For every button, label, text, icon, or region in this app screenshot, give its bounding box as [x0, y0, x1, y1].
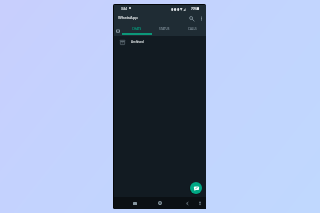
button[interactable]: Archived: [114, 36, 206, 48]
button[interactable]: CALLS: [177, 26, 208, 41]
button[interactable]: Camera: [114, 26, 122, 41]
staticText: WhatsApp: [118, 15, 138, 21]
button[interactable]: Back: [182, 197, 192, 209]
button[interactable]: Search: [186, 13, 196, 23]
staticText: Archived: [131, 40, 144, 44]
staticText: CHATS: [132, 27, 142, 31]
staticText: 3:34: [121, 7, 127, 11]
button[interactable]: New chat: [190, 182, 202, 194]
staticText: 70%: [191, 7, 197, 11]
button[interactable]: More options: [196, 13, 206, 23]
button[interactable]: Home: [155, 197, 165, 209]
button[interactable]: Assistant: [195, 197, 205, 209]
button[interactable]: STATUS: [152, 26, 177, 41]
button[interactable]: CHATS: [122, 26, 152, 41]
staticText: STATUS: [159, 27, 170, 31]
button[interactable]: Recent apps: [130, 197, 140, 209]
staticText: CALLS: [188, 27, 197, 31]
